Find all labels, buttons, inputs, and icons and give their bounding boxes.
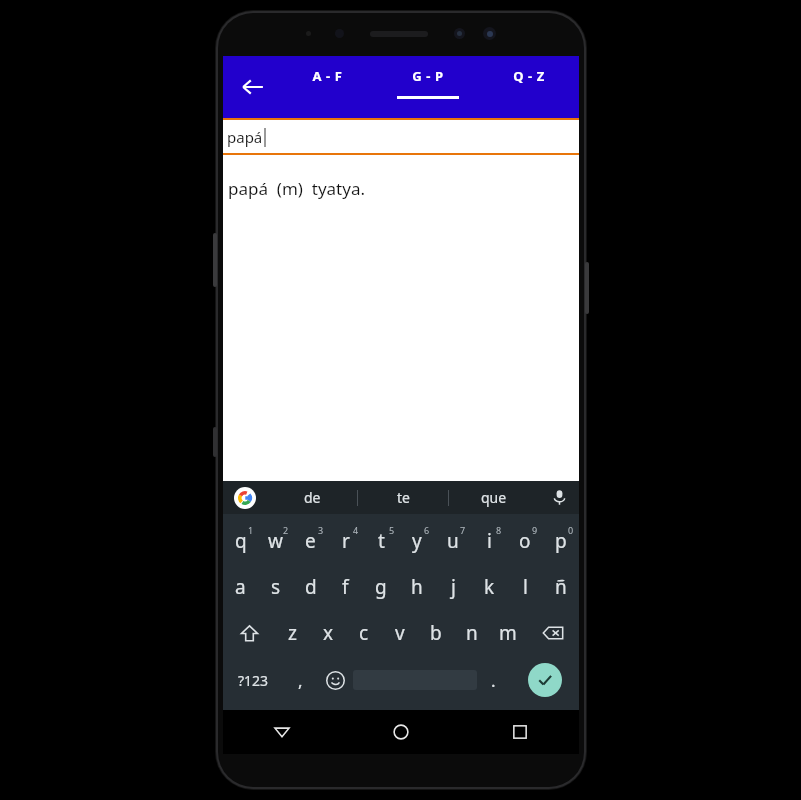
- button[interactable]: papá: [223, 120, 579, 153]
- button[interactable]: Back: [223, 710, 341, 754]
- staticText: w: [268, 528, 283, 554]
- button[interactable]: p: [543, 518, 579, 564]
- button[interactable]: t: [363, 518, 399, 564]
- staticText: l: [523, 574, 528, 600]
- button[interactable]: que: [449, 481, 539, 514]
- button[interactable]: Q - Z: [478, 56, 579, 118]
- button[interactable]: Shift: [223, 610, 275, 656]
- staticText: 1: [248, 524, 254, 536]
- staticText: k: [484, 574, 495, 600]
- button[interactable]: A - F: [277, 56, 377, 118]
- staticText: x: [323, 620, 334, 646]
- staticText: v: [395, 620, 405, 646]
- staticText: 3: [318, 524, 324, 536]
- button[interactable]: Voice input: [539, 481, 579, 514]
- button[interactable]: te: [358, 481, 448, 514]
- staticText: A - F: [312, 67, 343, 85]
- staticText: 7: [460, 524, 466, 536]
- button[interactable]: w: [258, 518, 293, 564]
- staticText: d: [305, 574, 317, 600]
- staticText: t: [378, 528, 385, 554]
- staticText: e: [305, 528, 316, 554]
- staticText: s: [271, 574, 281, 600]
- button[interactable]: x: [310, 610, 346, 656]
- button[interactable]: Back: [231, 65, 275, 109]
- button[interactable]: i: [471, 518, 507, 564]
- button[interactable]: .: [477, 656, 510, 704]
- button[interactable]: ?123: [223, 656, 284, 704]
- button[interactable]: b: [418, 610, 454, 656]
- button[interactable]: c: [346, 610, 382, 656]
- staticText: q: [235, 528, 247, 554]
- button[interactable]: g: [363, 564, 399, 610]
- button[interactable]: d: [293, 564, 328, 610]
- staticText: o: [519, 528, 531, 554]
- staticText: r: [342, 528, 350, 554]
- button[interactable]: j: [435, 564, 471, 610]
- staticText: ?123: [238, 671, 269, 690]
- staticText: papá: [227, 127, 263, 147]
- button[interactable]: G - P: [377, 56, 478, 118]
- button[interactable]: u: [435, 518, 471, 564]
- button[interactable]: Backspace: [526, 610, 579, 656]
- button[interactable]: ,: [284, 656, 317, 704]
- staticText: papá (m) tyatya.: [228, 177, 366, 200]
- staticText: p: [555, 528, 567, 554]
- staticText: u: [447, 528, 459, 554]
- button[interactable]: ñ: [543, 564, 579, 610]
- button[interactable]: m: [490, 610, 526, 656]
- staticText: f: [342, 574, 349, 600]
- button[interactable]: Recent apps: [460, 710, 579, 754]
- staticText: 0: [568, 524, 574, 536]
- staticText: i: [487, 528, 492, 554]
- staticText: 4: [353, 524, 359, 536]
- staticText: n: [466, 620, 478, 646]
- staticText: ñ: [555, 574, 567, 600]
- button[interactable]: Home: [341, 710, 460, 754]
- staticText: 5: [389, 524, 395, 536]
- staticText: z: [288, 620, 297, 646]
- staticText: g: [375, 574, 387, 600]
- button[interactable]: de: [267, 481, 357, 514]
- staticText: 9: [532, 524, 538, 536]
- staticText: que: [481, 488, 507, 507]
- staticText: h: [411, 574, 423, 600]
- button[interactable]: Enter: [510, 656, 579, 704]
- button[interactable]: e: [293, 518, 328, 564]
- button[interactable]: Emoji: [317, 656, 353, 704]
- button[interactable]: r: [328, 518, 363, 564]
- button[interactable]: n: [454, 610, 490, 656]
- staticText: ,: [298, 669, 303, 692]
- staticText: .: [491, 669, 496, 692]
- button[interactable]: Google: [223, 481, 267, 514]
- staticText: m: [499, 620, 517, 646]
- staticText: G - P: [412, 67, 444, 85]
- staticText: b: [430, 620, 442, 646]
- button[interactable]: z: [275, 610, 310, 656]
- button[interactable]: o: [507, 518, 543, 564]
- staticText: 8: [496, 524, 502, 536]
- staticText: c: [359, 620, 369, 646]
- button[interactable]: a: [223, 564, 258, 610]
- button[interactable]: f: [328, 564, 363, 610]
- staticText: a: [235, 574, 246, 600]
- staticText: 2: [283, 524, 289, 536]
- button[interactable]: q: [223, 518, 258, 564]
- staticText: de: [304, 488, 321, 507]
- staticText: y: [412, 528, 422, 554]
- button[interactable]: y: [399, 518, 435, 564]
- button[interactable]: l: [507, 564, 543, 610]
- button[interactable]: s: [258, 564, 293, 610]
- staticText: te: [397, 488, 410, 507]
- button[interactable]: k: [471, 564, 507, 610]
- staticText: 6: [424, 524, 430, 536]
- button[interactable]: h: [399, 564, 435, 610]
- button[interactable]: v: [382, 610, 418, 656]
- staticText: Q - Z: [513, 67, 545, 85]
- button[interactable]: Space: [353, 656, 477, 704]
- staticText: j: [451, 574, 456, 600]
